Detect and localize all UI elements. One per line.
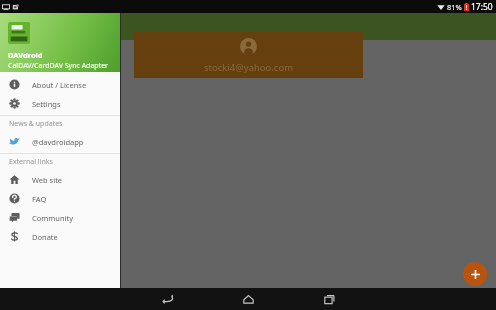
button[interactable]: DAVdroid — [0, 13, 120, 72]
button[interactable]: @davdroidapp — [0, 132, 120, 151]
staticText: Web site — [32, 175, 63, 185]
staticText: FAQ — [32, 194, 47, 204]
button[interactable]: About / License — [0, 75, 120, 94]
button[interactable]: Settings — [0, 94, 120, 113]
button[interactable]: Donate — [0, 227, 120, 246]
staticText: 81% — [447, 2, 462, 12]
staticText: Community — [32, 213, 74, 223]
staticText: News & updates — [9, 119, 63, 129]
button[interactable]: Back — [126, 288, 208, 310]
staticText: External links — [9, 157, 53, 167]
staticText: Settings — [32, 99, 61, 109]
staticText: DAVdroid — [8, 50, 43, 60]
staticText: About / License — [32, 80, 87, 90]
staticText: CalDAV/CardDAV Sync Adapter — [8, 61, 109, 71]
button[interactable]: Recents — [289, 288, 370, 310]
button[interactable]: FAQ — [0, 189, 120, 208]
button[interactable]: Home — [208, 288, 289, 310]
button[interactable]: Community — [0, 208, 120, 227]
staticText: 17:50 — [471, 1, 493, 13]
staticText: stocki4@yahoo.com — [204, 61, 294, 74]
button[interactable]: Add account — [463, 262, 487, 286]
button[interactable]: Web site — [0, 170, 120, 189]
button[interactable]: stocki4@yahoo.com — [134, 32, 363, 78]
staticText: @davdroidapp — [32, 137, 84, 147]
staticText: Donate — [32, 232, 58, 242]
